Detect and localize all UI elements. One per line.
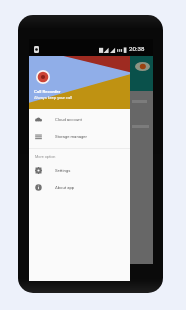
staticText: Call Recorder (34, 89, 61, 94)
staticText: 20:38 (129, 45, 145, 52)
staticText: Storage manager (55, 134, 87, 139)
staticText: About app (55, 185, 75, 190)
button[interactable]: About app (29, 179, 130, 196)
staticText: More option (35, 154, 56, 158)
staticText: Settings (55, 168, 71, 173)
button[interactable]: Settings (29, 162, 130, 179)
button[interactable]: Storage manager (29, 128, 130, 145)
staticText: Cloud account (55, 117, 82, 122)
button[interactable]: Cloud account (29, 111, 130, 128)
staticText: Always keep your call (34, 95, 73, 100)
